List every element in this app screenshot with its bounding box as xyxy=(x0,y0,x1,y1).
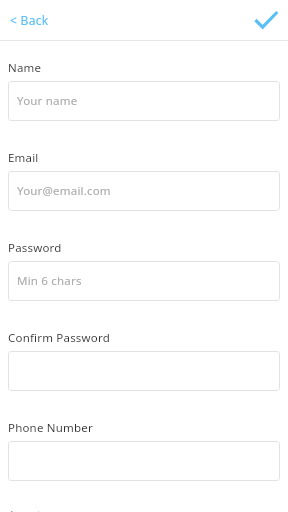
button[interactable]: Min 6 chars xyxy=(8,261,280,301)
staticText: < Back xyxy=(10,12,49,28)
button[interactable] xyxy=(8,441,280,481)
button[interactable]: < Back xyxy=(8,8,51,32)
staticText: Name xyxy=(8,60,42,76)
staticText: Email xyxy=(8,150,39,166)
staticText: Min 6 chars xyxy=(17,273,82,289)
staticText: Confirm Password xyxy=(8,330,110,346)
button[interactable]: Save xyxy=(250,4,282,36)
button[interactable]: Your@email.com xyxy=(8,171,280,211)
staticText: Agent xyxy=(8,507,42,512)
button[interactable]: Your name xyxy=(8,81,280,121)
staticText: Password xyxy=(8,240,62,256)
staticText: Your name xyxy=(17,93,78,109)
staticText: Your@email.com xyxy=(17,183,111,199)
staticText: Phone Number xyxy=(8,420,93,436)
button[interactable] xyxy=(8,351,280,391)
